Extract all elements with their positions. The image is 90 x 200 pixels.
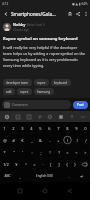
button[interactable]: Samsung — [34, 88, 54, 95]
staticText: < — [75, 150, 78, 155]
button[interactable]: Back — [65, 186, 75, 196]
button[interactable]: Key 8 — [63, 122, 72, 134]
button[interactable]: Key English (UK) — [25, 170, 64, 182]
staticText: > — [84, 150, 87, 155]
button[interactable]: Comment — [2, 100, 71, 109]
button[interactable]: rupee — [17, 88, 32, 95]
button[interactable]: Recents — [15, 186, 25, 196]
staticText: } — [74, 162, 76, 167]
button[interactable]: Key 0 — [81, 122, 90, 134]
button[interactable]: Key ! — [45, 146, 54, 158]
staticText: ; — [40, 150, 42, 155]
button[interactable]: Key { — [63, 158, 71, 170]
button[interactable]: Key ? — [54, 146, 63, 158]
staticText: ] — [58, 162, 60, 167]
staticText: " — [13, 150, 15, 155]
button[interactable]: Key ↵ — [74, 170, 90, 182]
staticText: 6 — [48, 126, 51, 131]
button[interactable]: Key > — [81, 146, 90, 158]
button[interactable]: Backspace — [79, 158, 90, 170]
staticText: & — [39, 138, 42, 143]
staticText: ↵ — [80, 174, 84, 179]
staticText: . — [68, 174, 70, 179]
staticText: add — [6, 90, 12, 94]
button[interactable]: Key · — [39, 158, 47, 170]
button[interactable]: Key ¥ — [12, 158, 21, 170]
button[interactable]: More options — [82, 10, 89, 17]
staticText: ● ▲ ▮ 64% — [72, 2, 88, 6]
button[interactable]: Key = — [30, 158, 39, 170]
button[interactable]: Post — [73, 101, 88, 109]
staticText: ! — [49, 150, 51, 155]
button[interactable]: Key " — [9, 146, 18, 158]
button[interactable]: Key 1 — [0, 122, 9, 134]
button[interactable]: Key + — [54, 134, 63, 146]
button[interactable]: Save — [66, 10, 74, 18]
staticText: ABC — [4, 174, 11, 178]
button[interactable]: rupee — [34, 79, 49, 86]
staticText: = — [66, 150, 69, 155]
staticText: Post — [77, 103, 84, 107]
button[interactable]: Back — [2, 10, 10, 18]
button[interactable]: Key 3 — [18, 122, 27, 134]
staticText: Samsung — [37, 90, 51, 94]
button[interactable]: Key 5 — [36, 122, 45, 134]
button[interactable]: Key 1/2 — [0, 158, 12, 170]
staticText: [ — [50, 162, 52, 167]
button[interactable]: Key 7 — [54, 122, 63, 134]
staticText: rupee — [20, 90, 29, 94]
button[interactable]: Key = — [63, 146, 72, 158]
button[interactable]: developer team — [3, 79, 32, 86]
staticText: Active Level 4 — [27, 23, 45, 27]
button[interactable]: Key - — [45, 134, 54, 146]
button[interactable]: Home — [40, 186, 50, 196]
button[interactable]: Settings — [57, 113, 65, 121]
staticText: rupee — [37, 81, 46, 85]
staticText: ? — [58, 150, 60, 155]
button[interactable]: Translate — [46, 113, 54, 121]
button[interactable]: More — [79, 113, 87, 121]
staticText: # — [12, 138, 15, 143]
staticText: 4:12 — [2, 2, 9, 6]
button[interactable]: Key < — [72, 146, 81, 158]
button[interactable]: Key ; — [36, 146, 45, 158]
staticText: 9 — [75, 126, 78, 131]
button[interactable]: Key * — [0, 146, 9, 158]
button[interactable]: Key 6 — [45, 122, 54, 134]
staticText: Comment — [12, 102, 28, 107]
button[interactable]: Clipboard — [36, 113, 44, 121]
button[interactable]: Key . — [64, 170, 74, 182]
button[interactable]: Text size — [68, 113, 76, 121]
button[interactable]: Key [ — [47, 158, 55, 170]
button[interactable]: Key @ — [0, 134, 9, 146]
button[interactable]: Emoji — [3, 113, 11, 121]
button[interactable]: Key 9 — [72, 122, 81, 134]
staticText: 3 — [21, 126, 24, 131]
button[interactable]: Key ABC — [0, 170, 15, 182]
button[interactable]: Key ' — [18, 146, 27, 158]
staticText: 4 — [30, 126, 33, 131]
button[interactable]: Key 2 — [9, 122, 18, 134]
button[interactable]: Key # — [9, 134, 18, 146]
button[interactable]: Key ) — [72, 134, 81, 146]
button[interactable]: keyboard — [51, 79, 71, 86]
staticText: € — [21, 138, 24, 143]
button[interactable]: Key _ — [27, 134, 36, 146]
button[interactable]: Key , — [15, 170, 25, 182]
button[interactable]: Key ° — [21, 158, 30, 170]
button[interactable]: Key / — [81, 134, 90, 146]
staticText: keyboard — [54, 81, 68, 85]
staticText: ' — [22, 150, 23, 155]
button[interactable]: Key & — [36, 134, 45, 146]
button[interactable]: Key 4 — [27, 122, 36, 134]
button[interactable]: Sticker — [14, 113, 22, 121]
button[interactable]: GIF — [25, 113, 33, 121]
button[interactable]: Key : — [27, 146, 36, 158]
staticText: , — [19, 174, 21, 179]
staticText: 1/2 — [3, 162, 9, 167]
button[interactable]: add — [3, 88, 15, 95]
button[interactable]: Share — [74, 10, 82, 18]
button[interactable]: Key € — [18, 134, 27, 146]
button[interactable]: Key ] — [55, 158, 63, 170]
button[interactable]: Key } — [71, 158, 79, 170]
